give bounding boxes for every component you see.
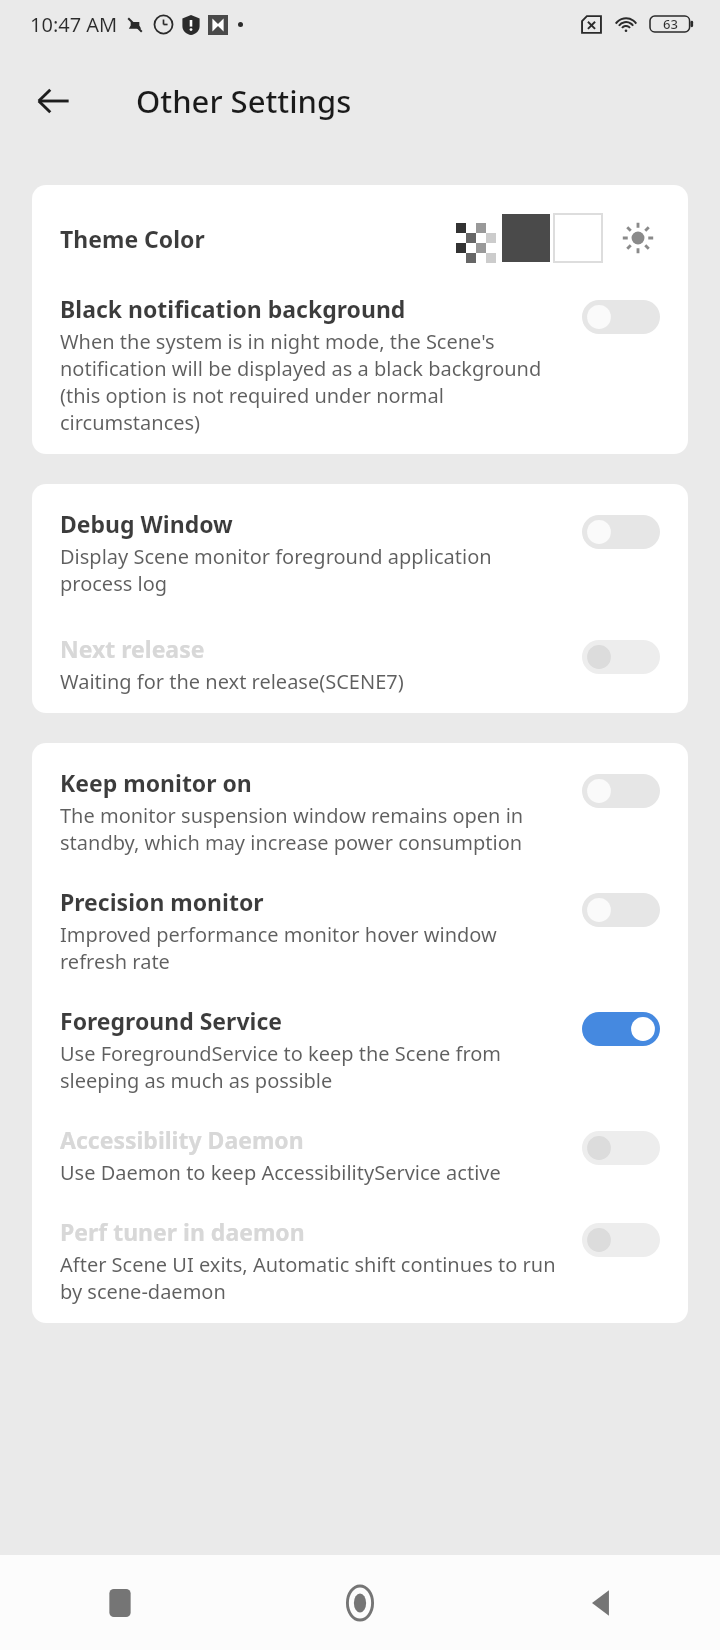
button[interactable]: Debug Window [582, 510, 660, 554]
staticText: Black notification background [60, 293, 406, 324]
staticText: Improved performance monitor hover windo… [60, 921, 568, 975]
button[interactable]: Theme Color [32, 205, 688, 271]
staticText: Debug Window [60, 508, 233, 539]
button[interactable]: Back [22, 70, 84, 132]
button[interactable]: Back [480, 1555, 720, 1650]
staticText: Theme Color [60, 223, 205, 254]
staticText: Keep monitor on [60, 767, 252, 798]
button[interactable]: Accessibility Daemon [582, 1126, 660, 1170]
staticText: Accessibility Daemon [60, 1124, 304, 1155]
button[interactable]: Black notification background [32, 289, 688, 440]
button[interactable]: Recent apps [0, 1555, 240, 1650]
staticText: After Scene UI exits, Automatic shift co… [60, 1251, 568, 1305]
button[interactable]: Keep monitor on [32, 763, 688, 860]
button[interactable]: Accessibility Daemon [32, 1120, 688, 1190]
button[interactable]: Next release [32, 629, 688, 699]
button[interactable]: Light theme [554, 214, 602, 262]
staticText: Perf tuner in daemon [60, 1216, 305, 1247]
staticText: Use ForegroundService to keep the Scene … [60, 1040, 568, 1094]
staticText: Use Daemon to keep AccessibilityService … [60, 1159, 501, 1186]
staticText: 63 [663, 15, 678, 33]
button[interactable]: Debug Window [32, 504, 688, 601]
button[interactable]: Precision monitor [32, 882, 688, 979]
button[interactable]: Foreground Service [582, 1007, 660, 1051]
button[interactable]: Precision monitor [582, 888, 660, 932]
staticText: The monitor suspension window remains op… [60, 802, 568, 856]
staticText: When the system is in night mode, the Sc… [60, 328, 568, 436]
button[interactable]: Home [240, 1555, 480, 1650]
staticText: Waiting for the next release(SCENE7) [60, 668, 404, 695]
button[interactable]: Perf tuner in daemon [582, 1218, 660, 1262]
staticText: Foreground Service [60, 1005, 282, 1036]
button[interactable]: Auto theme [616, 216, 660, 260]
staticText: Display Scene monitor foreground applica… [60, 543, 568, 597]
button[interactable]: Foreground Service [32, 1001, 688, 1098]
staticText: Other Settings [136, 80, 352, 122]
button[interactable]: Keep monitor on [582, 769, 660, 813]
staticText: Next release [60, 633, 205, 664]
staticText: 10:47 AM [30, 11, 118, 38]
button[interactable]: Black notification background [582, 295, 660, 339]
staticText: Precision monitor [60, 886, 264, 917]
button[interactable]: Next release [582, 635, 660, 679]
button[interactable]: Perf tuner in daemon [32, 1212, 688, 1309]
